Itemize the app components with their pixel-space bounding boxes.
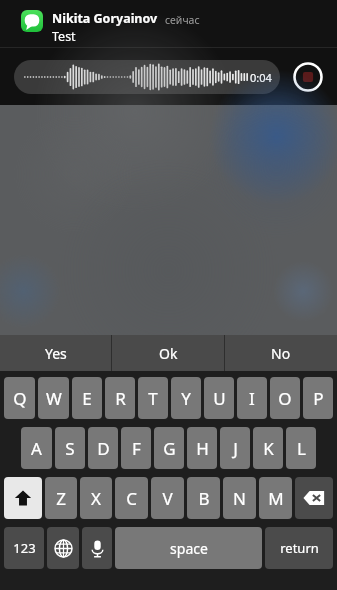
staticText: Q <box>13 387 27 410</box>
staticText: R <box>115 387 126 410</box>
button[interactable]: I <box>237 377 267 419</box>
staticText: T <box>148 387 158 410</box>
staticText: V <box>162 487 173 510</box>
button[interactable]: E <box>72 377 102 419</box>
staticText: N <box>233 487 246 510</box>
staticText: S <box>65 437 75 460</box>
staticText: return <box>280 539 319 557</box>
button[interactable]: L <box>286 427 316 469</box>
staticText: G <box>163 437 176 460</box>
button[interactable]: Backspace <box>295 477 333 519</box>
button[interactable]: F <box>121 427 151 469</box>
button[interactable]: Y <box>171 377 201 419</box>
staticText: Test <box>52 28 76 45</box>
button[interactable]: return <box>265 527 333 569</box>
button[interactable]: Stop recording <box>293 62 323 92</box>
staticText: J <box>233 437 238 460</box>
button[interactable]: Change keyboard language <box>47 527 79 569</box>
staticText: P <box>313 387 324 410</box>
button[interactable]: T <box>138 377 168 419</box>
staticText: K <box>263 437 274 460</box>
button[interactable]: U <box>204 377 234 419</box>
button[interactable]: A <box>21 427 52 469</box>
staticText: D <box>97 437 110 460</box>
button[interactable]: B <box>187 477 220 519</box>
button[interactable]: S <box>55 427 85 469</box>
button[interactable]: W <box>38 377 69 419</box>
button[interactable]: N <box>223 477 256 519</box>
button[interactable]: P <box>303 377 333 419</box>
button[interactable]: No <box>225 335 337 371</box>
button[interactable]: R <box>105 377 135 419</box>
button[interactable]: Ok <box>112 335 224 371</box>
button[interactable]: Dictation <box>82 527 112 569</box>
staticText: 123 <box>13 539 36 557</box>
staticText: W <box>46 387 62 410</box>
staticText: C <box>126 487 137 510</box>
staticText: M <box>268 487 284 510</box>
staticText: H <box>196 437 209 460</box>
button[interactable]: D <box>88 427 118 469</box>
button[interactable]: 123 <box>4 527 44 569</box>
button[interactable]: Yes <box>0 335 111 371</box>
button[interactable]: Nikita Goryainov <box>0 0 337 48</box>
staticText: L <box>297 437 306 460</box>
button[interactable]: C <box>115 477 148 519</box>
staticText: X <box>91 487 101 510</box>
staticText: U <box>213 387 226 410</box>
staticText: 0:04 <box>250 70 272 85</box>
staticText: I <box>249 387 255 410</box>
staticText: Yes <box>45 344 67 363</box>
button[interactable]: M <box>259 477 292 519</box>
button[interactable]: X <box>80 477 112 519</box>
button[interactable]: Z <box>45 477 77 519</box>
button[interactable]: space <box>115 527 262 569</box>
button[interactable]: K <box>253 427 283 469</box>
staticText: B <box>198 487 210 510</box>
staticText: space <box>170 539 208 558</box>
button[interactable]: V <box>151 477 184 519</box>
button[interactable]: J <box>220 427 250 469</box>
staticText: Nikita Goryainov <box>52 10 158 27</box>
button[interactable]: G <box>154 427 184 469</box>
staticText: O <box>278 387 292 410</box>
staticText: E <box>82 387 92 410</box>
staticText: Z <box>56 487 66 510</box>
staticText: сейчас <box>165 13 200 27</box>
staticText: F <box>132 437 141 460</box>
button[interactable]: O <box>270 377 300 419</box>
staticText: No <box>271 344 291 363</box>
button[interactable]: 0:04 <box>14 60 280 94</box>
staticText: A <box>31 437 42 460</box>
button[interactable]: Shift <box>4 477 42 519</box>
staticText: Ok <box>159 344 178 363</box>
staticText: Y <box>181 387 191 410</box>
button[interactable]: Q <box>4 377 35 419</box>
button[interactable]: H <box>187 427 217 469</box>
